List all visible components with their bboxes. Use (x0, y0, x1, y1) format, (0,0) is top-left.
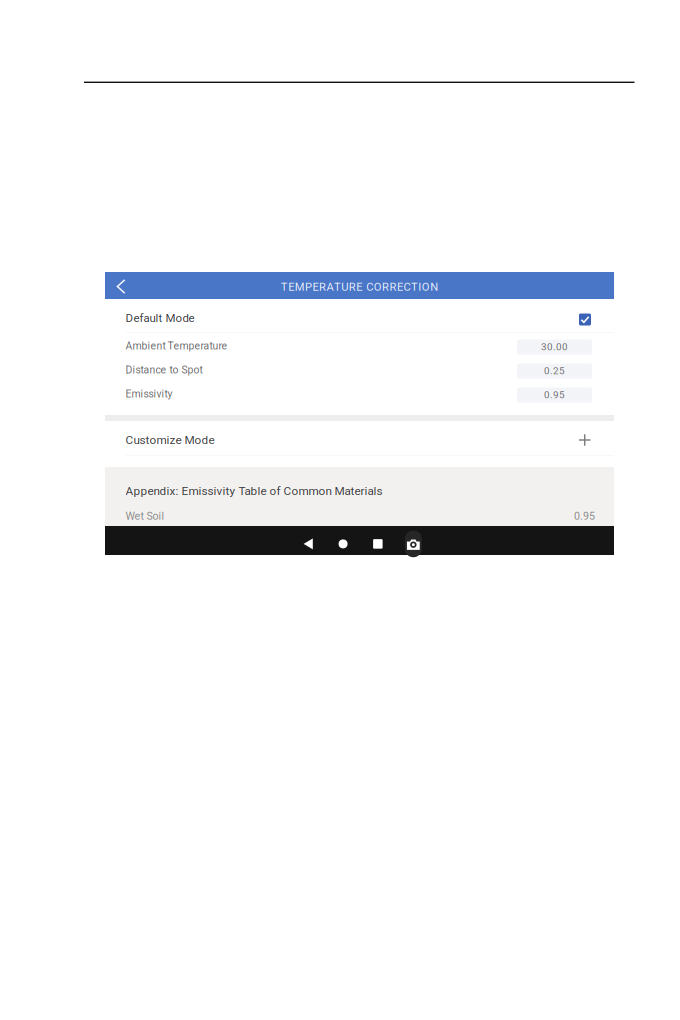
staticText: Default Mode (125, 311, 194, 325)
button[interactable]: Back (290, 529, 326, 558)
staticText: Ambient Temperature (125, 340, 227, 352)
staticText: Appendix: Emissivity Table of Common Mat… (125, 484, 382, 498)
button[interactable]: Default Mode (105, 307, 614, 329)
button[interactable]: Back (107, 271, 134, 300)
button[interactable]: Emissivity (105, 382, 614, 406)
staticText: Customize Mode (125, 433, 214, 447)
button[interactable]: Home (326, 529, 360, 558)
staticText: TEMPERATURE CORRECTION (281, 280, 438, 293)
staticText: Distance to Spot (125, 364, 202, 376)
button[interactable]: Screenshot (396, 529, 431, 558)
staticText: Emissivity (125, 388, 172, 400)
button[interactable]: Recent apps (360, 529, 396, 558)
button[interactable]: Ambient Temperature (105, 334, 614, 358)
staticText: 30.00 (541, 341, 568, 353)
staticText: 0.95 (544, 389, 565, 401)
button[interactable]: Customize Mode (105, 427, 614, 453)
button[interactable]: Distance to Spot (105, 358, 614, 382)
staticText: 0.95 (574, 510, 595, 522)
staticText: 0.25 (544, 365, 565, 377)
staticText: Wet Soil (125, 510, 164, 522)
